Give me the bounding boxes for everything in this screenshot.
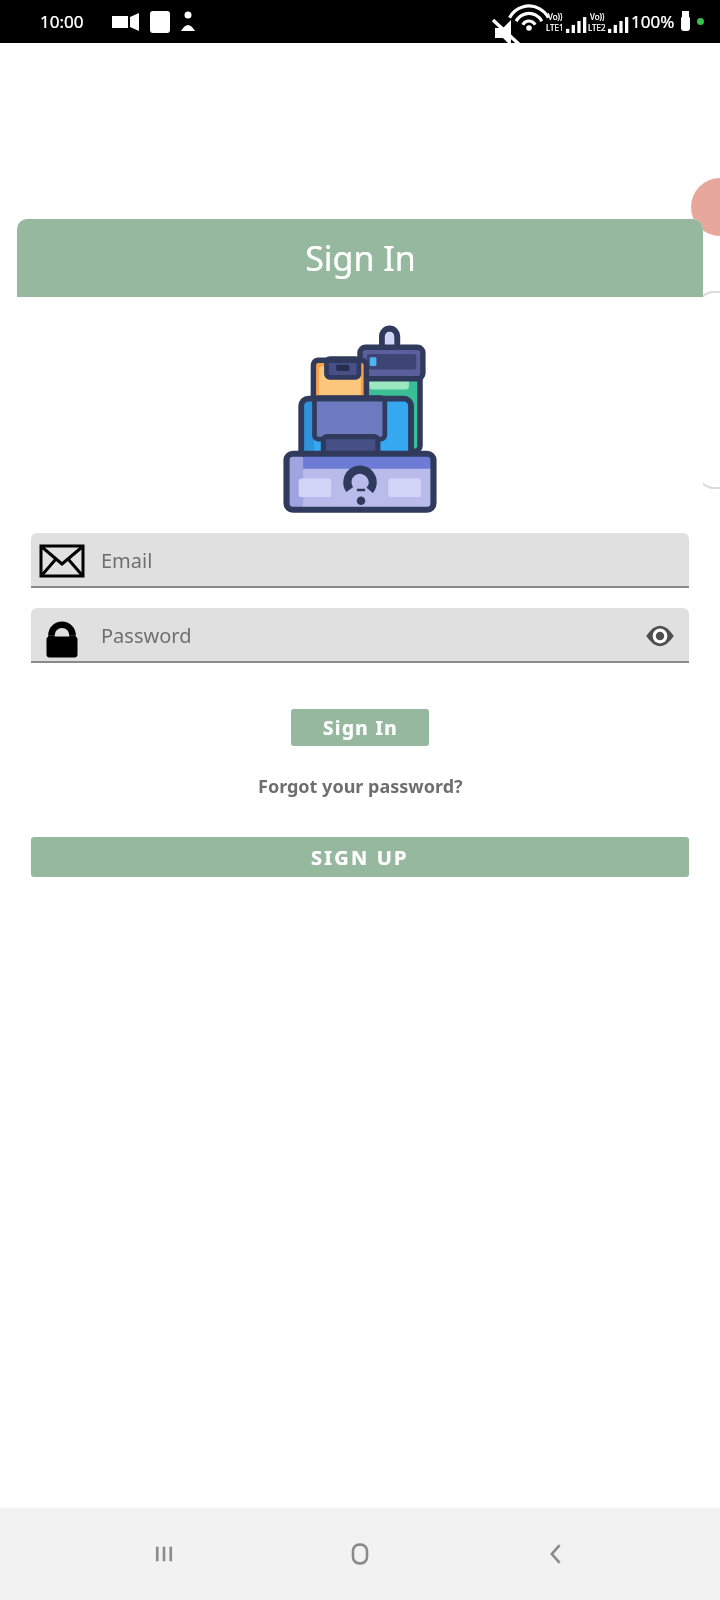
staticText: Forgot your password? (258, 774, 463, 799)
staticText: Sign In (305, 235, 416, 281)
staticText: Password (101, 622, 645, 649)
button[interactable]: Recent apps (132, 1522, 196, 1586)
staticText: Vo)) (590, 11, 605, 22)
staticText: Email (101, 547, 675, 574)
button[interactable]: Show password (645, 625, 675, 647)
staticText: 10:00 (40, 10, 84, 33)
staticText: LTE2 (588, 22, 606, 33)
button[interactable]: Forgot your password? (250, 770, 471, 803)
button[interactable]: Home (328, 1522, 392, 1586)
button[interactable]: Back (524, 1522, 588, 1586)
staticText: Vo)) (548, 11, 563, 22)
other: Password (37, 611, 87, 661)
staticText: SIGN UP (311, 844, 409, 871)
other: Email (37, 536, 87, 586)
button[interactable]: SIGN UP (31, 837, 689, 877)
button[interactable]: Email (31, 533, 689, 588)
staticText: LTE1 (546, 22, 564, 33)
button[interactable]: Password (31, 608, 689, 663)
staticText: 100% (631, 10, 675, 33)
button[interactable]: Sign In (291, 709, 429, 746)
staticText: Sign In (323, 715, 398, 741)
